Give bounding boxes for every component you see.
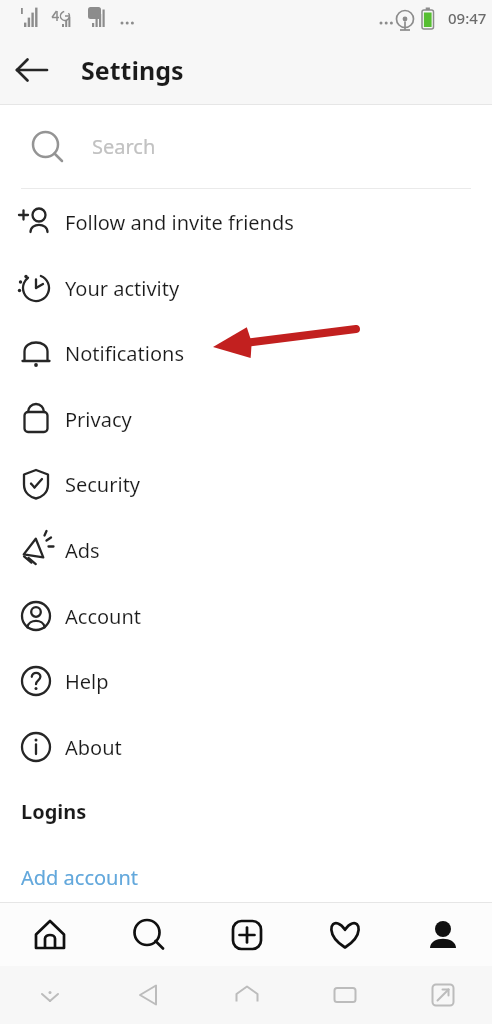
staticText: Follow and invite friends: [65, 209, 294, 236]
staticText: Privacy: [65, 406, 132, 433]
button[interactable]: Search: [99, 903, 198, 966]
button[interactable]: Notifications: [0, 320, 492, 386]
staticText: Account: [65, 603, 142, 630]
button[interactable]: Security: [0, 451, 492, 517]
button[interactable]: Privacy: [0, 386, 492, 452]
staticText: Search: [92, 133, 156, 160]
button[interactable]: Home: [198, 966, 296, 1024]
button[interactable]: Activity: [296, 903, 394, 966]
button[interactable]: Add account: [0, 852, 492, 902]
button[interactable]: Your activity: [0, 255, 492, 321]
button[interactable]: Help: [0, 648, 492, 714]
button[interactable]: Recents: [296, 966, 394, 1024]
staticText: Logins: [21, 798, 87, 825]
staticText: Help: [65, 668, 109, 695]
staticText: 09:47: [448, 8, 487, 28]
button[interactable]: New post: [198, 903, 296, 966]
button[interactable]: Search: [0, 105, 492, 188]
button[interactable]: Back: [3, 41, 61, 99]
button[interactable]: Profile: [394, 903, 492, 966]
staticText: Your activity: [65, 275, 180, 302]
staticText: Security: [65, 471, 141, 498]
staticText: Notifications: [65, 340, 184, 367]
button[interactable]: Ads: [0, 517, 492, 583]
button[interactable]: Follow and invite friends: [0, 189, 492, 255]
staticText: Settings: [81, 53, 184, 87]
button[interactable]: Notifications shade: [0, 966, 99, 1024]
button[interactable]: Home: [0, 903, 99, 966]
staticText: Add account: [21, 864, 139, 891]
staticText: Ads: [65, 537, 100, 564]
staticText: About: [65, 734, 122, 761]
button[interactable]: About: [0, 714, 492, 780]
button[interactable]: Account: [0, 583, 492, 649]
button[interactable]: Back: [99, 966, 198, 1024]
button[interactable]: Full screen: [394, 966, 492, 1024]
